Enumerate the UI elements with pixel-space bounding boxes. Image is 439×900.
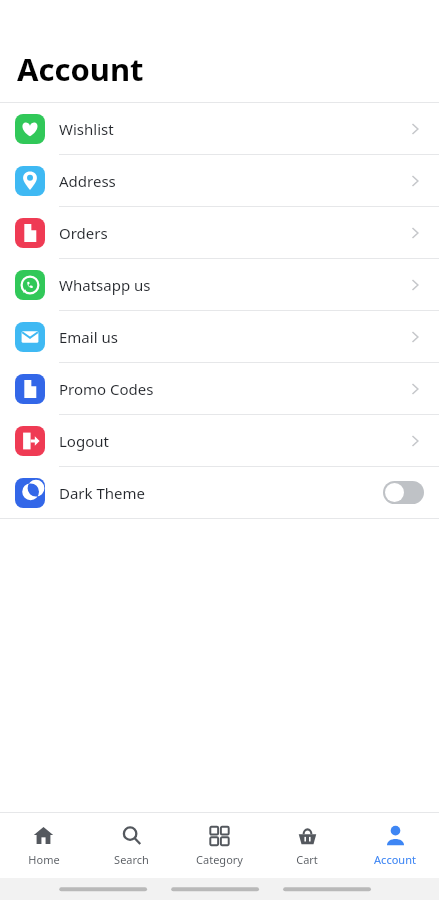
button[interactable]: Cart [263,813,351,878]
staticText: Search [114,852,149,867]
button[interactable]: Dark Theme [0,467,439,518]
button[interactable]: Orders [0,207,439,258]
staticText: Dark Theme [59,483,383,503]
staticText: Account [17,48,144,90]
staticText: Category [196,852,243,867]
staticText: Promo Codes [59,379,406,399]
button[interactable]: Dark Theme toggle [383,481,424,504]
staticText: Cart [296,852,318,867]
staticText: Wishlist [59,119,406,139]
button[interactable]: Promo Codes [0,363,439,414]
staticText: Address [59,171,406,191]
button[interactable]: Address [0,155,439,206]
staticText: Email us [59,327,406,347]
button[interactable]: Search [87,813,175,878]
staticText: Account [374,852,416,867]
button[interactable]: Email us [0,311,439,362]
button[interactable]: Account [351,813,439,878]
button[interactable]: Category [175,813,263,878]
staticText: Orders [59,223,406,243]
button[interactable]: Whatsapp us [0,259,439,310]
staticText: Home [28,852,60,867]
button[interactable]: Wishlist [0,103,439,154]
button[interactable]: Home [0,813,87,878]
staticText: Whatsapp us [59,275,406,295]
button[interactable]: Logout [0,415,439,466]
staticText: Logout [59,431,406,451]
